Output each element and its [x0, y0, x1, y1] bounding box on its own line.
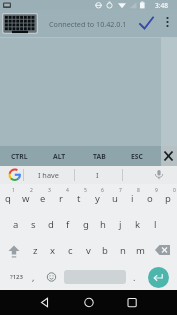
button[interactable]: n [115, 237, 131, 263]
button[interactable]: c [62, 237, 78, 263]
staticText: z [33, 244, 38, 257]
staticText: ESC [131, 152, 143, 161]
staticText: j [119, 218, 122, 231]
button[interactable]: d [43, 211, 59, 237]
button[interactable] [31, 290, 59, 315]
button[interactable] [161, 146, 177, 166]
staticText: q [5, 192, 11, 205]
staticText: v [86, 244, 91, 257]
button[interactable]: t [71, 185, 87, 211]
staticText: ?123 [10, 273, 23, 281]
staticText: k [135, 218, 141, 231]
button[interactable]: o [142, 185, 158, 211]
button[interactable]: I have [26, 166, 71, 184]
button[interactable]: w [18, 185, 34, 211]
staticText: ALT [53, 152, 66, 161]
button[interactable]: j [112, 211, 128, 237]
button[interactable]: u [107, 185, 123, 211]
button[interactable]: s [25, 211, 41, 237]
button[interactable]: CTRL [5, 146, 33, 166]
button[interactable]: y [89, 185, 105, 211]
button[interactable]: h [95, 211, 111, 237]
staticText: CTRL [11, 152, 28, 161]
staticText: TAB [93, 152, 106, 161]
staticText: Connected to 10.42.0.1 [49, 19, 127, 29]
staticText: , [32, 271, 35, 283]
staticText: r [59, 192, 63, 205]
button[interactable]: p [160, 185, 176, 211]
staticText: s [31, 218, 36, 231]
staticText: l [154, 218, 157, 231]
button[interactable]: f [60, 211, 76, 237]
staticText: 3 [48, 187, 51, 194]
staticText: n [120, 244, 126, 257]
button[interactable]: ESC [123, 146, 151, 166]
button[interactable]: g [78, 211, 94, 237]
staticText: w [22, 192, 30, 205]
button[interactable]: z [27, 237, 43, 263]
button[interactable]: x [45, 237, 61, 263]
staticText: 0 [173, 187, 176, 194]
button[interactable]: I [86, 166, 108, 184]
staticText: 8 [137, 187, 140, 194]
button[interactable]: ALT [45, 146, 73, 166]
staticText: g [83, 218, 89, 231]
staticText: I [96, 170, 99, 180]
staticText: i [131, 192, 134, 205]
button[interactable]: v [80, 237, 96, 263]
staticText: 4 [66, 187, 69, 194]
staticText: o [147, 192, 153, 205]
button[interactable] [134, 14, 158, 33]
staticText: m [136, 244, 145, 257]
staticText: . [133, 271, 136, 283]
button[interactable]: l [147, 211, 163, 237]
staticText: c [68, 244, 73, 257]
button[interactable]: r [53, 185, 69, 211]
staticText: I have [38, 170, 59, 180]
button[interactable]: TAB [85, 146, 113, 166]
staticText: e [40, 192, 46, 205]
staticText: t [77, 192, 81, 205]
button[interactable] [118, 290, 146, 315]
staticText: x [50, 244, 56, 257]
staticText: b [102, 244, 108, 257]
staticText: 2 [30, 187, 33, 194]
staticText: p [165, 192, 171, 205]
button[interactable]: e [35, 185, 51, 211]
button[interactable]: , [26, 264, 41, 290]
button[interactable]: b [97, 237, 113, 263]
staticText: 9 [155, 187, 158, 194]
staticText: a [13, 218, 19, 231]
button[interactable]: a [8, 211, 24, 237]
button[interactable]: m [132, 237, 148, 263]
button[interactable]: ?123 [4, 264, 28, 290]
button[interactable] [43, 264, 60, 290]
button[interactable] [160, 10, 177, 37]
staticText: 7 [119, 187, 122, 194]
staticText: u [112, 192, 118, 205]
staticText: 1 [12, 187, 15, 194]
staticText: f [66, 218, 70, 231]
button[interactable]: q [0, 185, 16, 211]
staticText: 6 [101, 187, 104, 194]
staticText: y [95, 192, 100, 205]
button[interactable]: k [130, 211, 146, 237]
button[interactable] [0, 237, 26, 263]
button[interactable] [148, 267, 169, 288]
staticText: d [48, 218, 54, 231]
button[interactable] [75, 290, 103, 315]
button[interactable] [151, 237, 177, 263]
button[interactable]: . [127, 264, 141, 290]
staticText: 5 [84, 187, 87, 194]
button[interactable] [150, 166, 168, 184]
staticText: h [100, 218, 106, 231]
button[interactable] [8, 168, 22, 182]
staticText: 3:48 [155, 1, 168, 10]
button[interactable]: i [124, 185, 140, 211]
